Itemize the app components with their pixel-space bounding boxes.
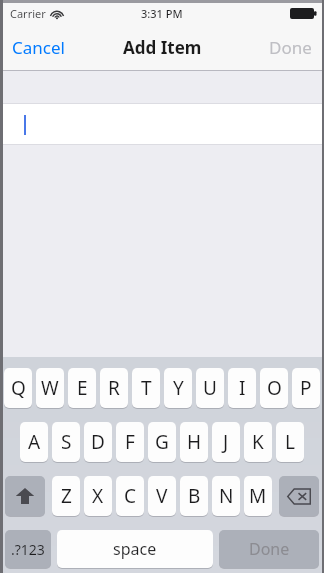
button[interactable]: B — [180, 476, 208, 516]
button[interactable] — [0, 104, 324, 144]
staticText: L — [285, 429, 295, 455]
staticText: G — [155, 429, 169, 455]
staticText: U — [203, 375, 217, 401]
button[interactable]: V — [148, 476, 176, 516]
button[interactable]: F — [116, 422, 144, 462]
button[interactable]: K — [244, 422, 272, 462]
staticText: space — [113, 538, 157, 560]
staticText: E — [77, 375, 88, 401]
staticText: V — [156, 483, 168, 509]
staticText: K — [252, 429, 264, 455]
button[interactable]: U — [196, 368, 224, 408]
button[interactable]: Y — [164, 368, 192, 408]
button[interactable]: G — [148, 422, 176, 462]
button[interactable]: T — [132, 368, 160, 408]
button[interactable]: N — [212, 476, 240, 516]
staticText: H — [187, 429, 202, 455]
staticText: M — [249, 483, 267, 509]
button[interactable]: Cancel — [8, 32, 69, 63]
button[interactable]: Done — [265, 32, 316, 63]
staticText: Add Item — [123, 36, 202, 59]
button[interactable]: C — [116, 476, 144, 516]
staticText: I — [239, 375, 246, 401]
staticText: A — [28, 429, 41, 455]
button[interactable]: Q — [4, 368, 32, 408]
button[interactable]: L — [276, 422, 304, 462]
button[interactable]: Backspace — [279, 476, 319, 516]
staticText: B — [188, 483, 201, 509]
staticText: Done — [249, 538, 290, 560]
button[interactable]: Z — [52, 476, 80, 516]
button[interactable]: R — [100, 368, 128, 408]
staticText: Y — [173, 375, 184, 401]
button[interactable]: O — [260, 368, 288, 408]
button[interactable]: space — [57, 530, 213, 568]
staticText: C — [124, 483, 137, 509]
button[interactable]: Shift — [5, 476, 45, 516]
button[interactable]: X — [84, 476, 112, 516]
button[interactable]: P — [292, 368, 320, 408]
staticText: Q — [11, 375, 26, 401]
staticText: T — [141, 375, 152, 401]
button[interactable]: A — [20, 422, 48, 462]
staticText: Carrier — [10, 6, 46, 21]
staticText: J — [223, 429, 229, 455]
staticText: R — [108, 375, 120, 401]
button[interactable]: H — [180, 422, 208, 462]
button[interactable]: M — [244, 476, 272, 516]
button[interactable]: D — [84, 422, 112, 462]
staticText: W — [41, 375, 59, 401]
staticText: S — [61, 429, 72, 455]
button[interactable]: I — [228, 368, 256, 408]
button[interactable]: E — [68, 368, 96, 408]
staticText: Z — [61, 483, 72, 509]
button[interactable]: Done — [219, 530, 319, 568]
staticText: P — [300, 375, 312, 401]
staticText: Cancel — [12, 36, 65, 59]
button[interactable]: .?123 — [5, 530, 51, 568]
staticText: F — [125, 429, 135, 455]
button[interactable]: S — [52, 422, 80, 462]
staticText: N — [219, 483, 234, 509]
staticText: O — [267, 375, 282, 401]
staticText: D — [91, 429, 105, 455]
button[interactable]: J — [212, 422, 240, 462]
staticText: 3:31 PM — [141, 6, 183, 21]
staticText: .?123 — [11, 540, 45, 559]
staticText: X — [92, 483, 104, 509]
button[interactable]: W — [36, 368, 64, 408]
staticText: Done — [269, 36, 312, 59]
